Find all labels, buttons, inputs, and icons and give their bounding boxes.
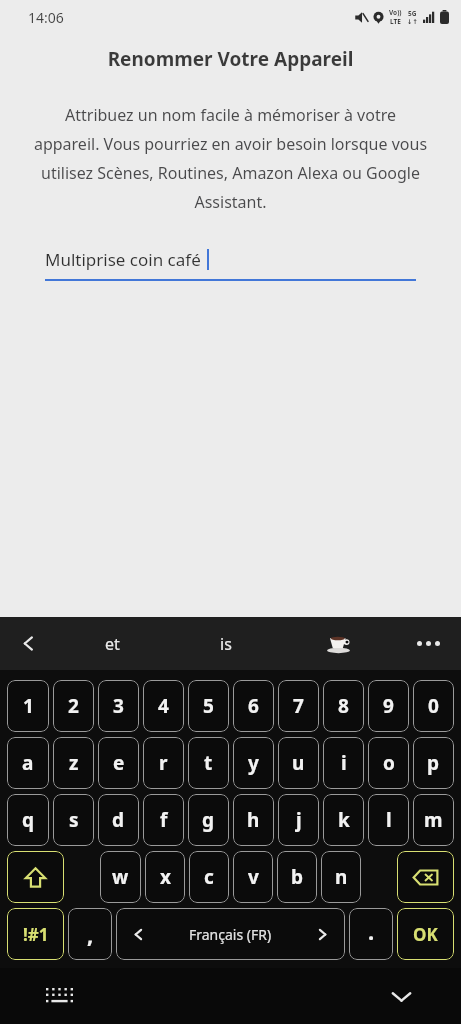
button[interactable]: 3	[98, 680, 139, 732]
button[interactable]: More options	[395, 617, 461, 670]
button[interactable]: Backspace	[397, 851, 454, 903]
button[interactable]: Comma	[68, 908, 112, 960]
staticText: t	[204, 750, 213, 776]
staticText: o	[383, 750, 395, 776]
button[interactable]: 1	[7, 680, 49, 732]
button[interactable]: a	[7, 737, 49, 789]
button[interactable]: v	[233, 851, 273, 903]
button[interactable]: y	[233, 737, 274, 789]
button[interactable]: is	[169, 617, 282, 670]
button[interactable]: Shift	[7, 851, 64, 903]
button[interactable]: !#1	[7, 908, 64, 960]
staticText: z	[69, 750, 79, 776]
button[interactable]: 0	[413, 680, 454, 732]
staticText: s	[69, 807, 79, 833]
staticText: p	[427, 750, 440, 776]
button[interactable]: m	[413, 794, 454, 846]
staticText: d	[112, 807, 125, 833]
staticText: x	[160, 864, 171, 890]
button[interactable]: Hide keyboard	[390, 985, 413, 1008]
staticText: 9	[383, 693, 394, 719]
button[interactable]: Change keyboard	[46, 988, 73, 1005]
staticText: Multiprise coin café	[45, 248, 201, 271]
staticText: Attribuez un nom facile à mémoriser à vo…	[33, 104, 428, 212]
staticText: 6	[248, 693, 259, 719]
staticText: m	[424, 807, 443, 833]
staticText: w	[112, 864, 129, 890]
button[interactable]: OK	[397, 908, 454, 960]
staticText: k	[338, 807, 350, 833]
button[interactable]: s	[53, 794, 94, 846]
staticText: Vo))	[389, 8, 402, 17]
button[interactable]: n	[321, 851, 361, 903]
staticText: 5G	[408, 9, 417, 18]
button[interactable]: et	[56, 617, 169, 670]
staticText: .	[368, 916, 375, 946]
staticText: 4	[158, 693, 169, 719]
staticText: j	[296, 807, 302, 833]
staticText: r	[159, 750, 168, 776]
button[interactable]: d	[98, 794, 139, 846]
staticText: 14:06	[28, 8, 64, 27]
button[interactable]: 7	[278, 680, 319, 732]
staticText: OK	[413, 923, 438, 946]
staticText: l	[386, 807, 392, 833]
staticText: ↓↑	[407, 18, 418, 26]
staticText: i	[341, 750, 347, 776]
button[interactable]: o	[368, 737, 409, 789]
button[interactable]: t	[188, 737, 229, 789]
button[interactable]: 4	[143, 680, 184, 732]
staticText: n	[335, 864, 348, 890]
staticText: u	[292, 750, 305, 776]
staticText: a	[22, 750, 34, 776]
button[interactable]: u	[278, 737, 319, 789]
button[interactable]: x	[145, 851, 185, 903]
button[interactable]: 6	[233, 680, 274, 732]
staticText: ,	[87, 919, 94, 949]
staticText: 8	[338, 693, 349, 719]
button[interactable]: 5	[188, 680, 229, 732]
staticText: LTE	[390, 17, 401, 26]
staticText: v	[248, 864, 259, 890]
staticText: 2	[68, 693, 79, 719]
button[interactable]: 2	[53, 680, 94, 732]
staticText: f	[160, 807, 168, 833]
staticText: 5	[203, 693, 214, 719]
button[interactable]: g	[188, 794, 229, 846]
button[interactable]: Emoji	[282, 617, 395, 670]
button[interactable]: Previous suggestions	[0, 617, 56, 670]
button[interactable]: q	[7, 794, 49, 846]
staticText: 1	[23, 693, 34, 719]
staticText: h	[247, 807, 260, 833]
staticText: Renommer Votre Appareil	[0, 46, 461, 72]
button[interactable]: c	[189, 851, 229, 903]
staticText: Français (FR)	[189, 925, 272, 944]
button[interactable]: Period	[349, 908, 393, 960]
button[interactable]: b	[277, 851, 317, 903]
button[interactable]: z	[53, 737, 94, 789]
button[interactable]: k	[323, 794, 364, 846]
button[interactable]: h	[233, 794, 274, 846]
button[interactable]: j	[278, 794, 319, 846]
button[interactable]: w	[100, 851, 141, 903]
staticText: 0	[428, 693, 439, 719]
staticText: y	[248, 750, 259, 776]
staticText: g	[202, 807, 215, 833]
staticText: c	[204, 864, 214, 890]
button[interactable]: 9	[368, 680, 409, 732]
button[interactable]: l	[368, 794, 409, 846]
staticText: q	[22, 807, 35, 833]
staticText: e	[113, 750, 125, 776]
button[interactable]: 8	[323, 680, 364, 732]
staticText: et	[105, 633, 120, 655]
button[interactable]: r	[143, 737, 184, 789]
button[interactable]: e	[98, 737, 139, 789]
staticText: b	[291, 864, 304, 890]
staticText: 3	[113, 693, 124, 719]
button[interactable]: f	[143, 794, 184, 846]
button[interactable]: Multiprise coin café	[45, 248, 416, 281]
button[interactable]: p	[413, 737, 454, 789]
button[interactable]: i	[323, 737, 364, 789]
button[interactable]: Français (FR)	[116, 908, 345, 960]
staticText: 7	[293, 693, 304, 719]
